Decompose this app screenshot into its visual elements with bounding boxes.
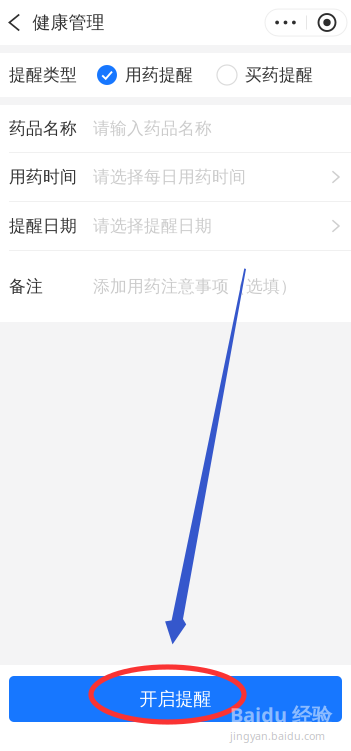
staticText: Baidu 经验 — [230, 701, 332, 728]
staticText: jingyan.baidu.com — [230, 729, 325, 743]
staticText: 请输入药品名称 — [93, 118, 212, 139]
button[interactable]: 买药提醒 — [215, 53, 315, 97]
button[interactable]: 提醒日期 — [0, 202, 351, 250]
staticText: 提醒日期 — [9, 215, 77, 237]
button[interactable]: More — [265, 9, 306, 36]
staticText: 药品名称 — [9, 118, 77, 139]
button[interactable]: 用药时间 — [0, 153, 351, 201]
button[interactable]: 用药提醒 — [95, 53, 195, 97]
button[interactable]: 药品名称 — [0, 105, 351, 152]
staticText: 添加用药注意事项（选填） — [93, 276, 297, 297]
staticText: 买药提醒 — [245, 64, 313, 86]
staticText: 开启提醒 — [139, 688, 211, 710]
staticText: 提醒类型 — [9, 64, 77, 86]
staticText: 请选择提醒日期 — [93, 215, 212, 237]
staticText: 健康管理 — [33, 11, 105, 34]
staticText: 用药时间 — [9, 166, 77, 188]
button[interactable]: 备注 — [0, 251, 351, 322]
button[interactable]: 开启提醒 — [9, 676, 342, 722]
button[interactable]: Back — [0, 0, 26, 45]
staticText: 备注 — [9, 276, 43, 297]
staticText: 请选择每日用药时间 — [93, 166, 246, 188]
button[interactable]: Close mini program — [307, 9, 347, 36]
staticText: 用药提醒 — [125, 64, 193, 86]
